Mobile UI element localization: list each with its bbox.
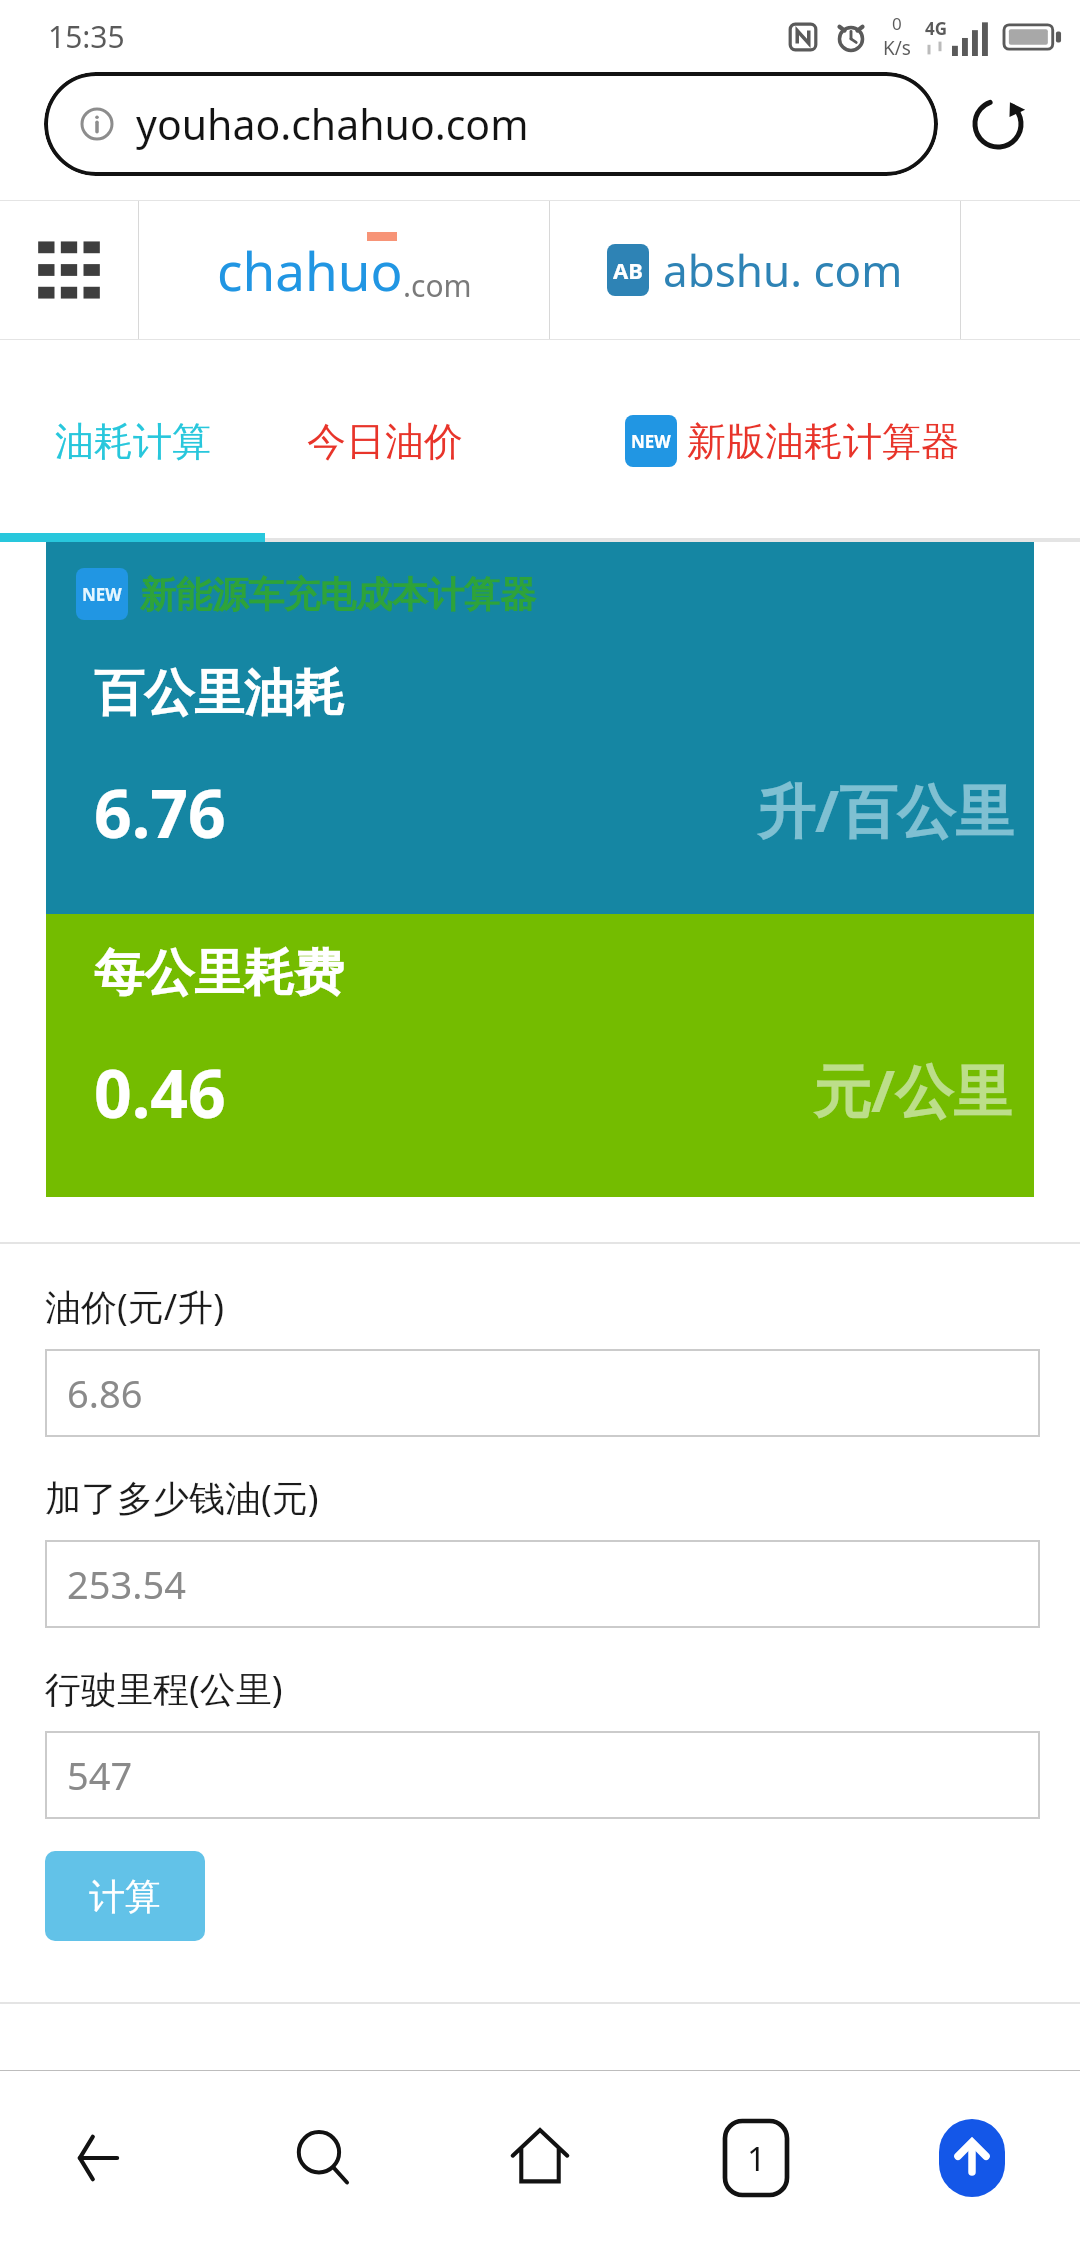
button[interactable]: NEW bbox=[505, 340, 1080, 542]
staticText: 计算 bbox=[89, 1874, 161, 1919]
button[interactable]: Reload bbox=[960, 86, 1036, 162]
staticText: 4G bbox=[925, 17, 948, 40]
button[interactable]: Apps bbox=[0, 200, 138, 340]
staticText: 253.54 bbox=[67, 1558, 186, 1610]
staticText: 6.76 bbox=[94, 767, 226, 857]
button[interactable]: Back bbox=[0, 2071, 216, 2244]
staticText: NEW bbox=[631, 430, 671, 453]
staticText: 0 bbox=[892, 12, 902, 35]
staticText: K/s bbox=[883, 35, 911, 61]
button[interactable]: 6.86 bbox=[45, 1349, 1040, 1437]
staticText: .com bbox=[403, 265, 472, 306]
staticText: abshu. com bbox=[663, 240, 903, 300]
button[interactable]: youhao.chahuo.com bbox=[44, 72, 938, 176]
staticText: 1 bbox=[747, 2136, 766, 2181]
staticText: chahuo bbox=[217, 234, 403, 306]
button[interactable]: 新能源车充电成本计算器 bbox=[140, 572, 536, 617]
staticText: 油价(元/升) bbox=[45, 1282, 224, 1331]
button[interactable]: 今日油价 bbox=[265, 340, 505, 542]
staticText: 油耗计算 bbox=[55, 417, 211, 466]
staticText: 百公里油耗 bbox=[94, 662, 344, 725]
button[interactable]: Scroll to top bbox=[864, 2071, 1080, 2244]
staticText: 今日油价 bbox=[307, 417, 463, 466]
button[interactable]: AB bbox=[550, 200, 960, 340]
staticText: 升/百公里 bbox=[757, 770, 1014, 849]
button[interactable]: 油耗计算 bbox=[0, 340, 265, 542]
staticText: 每公里耗费 bbox=[94, 942, 344, 1005]
button[interactable]: 计算 bbox=[45, 1851, 205, 1941]
button[interactable]: Search bbox=[216, 2071, 432, 2244]
button[interactable]: Tabs bbox=[648, 2071, 864, 2244]
staticText: youhao.chahuo.com bbox=[136, 96, 529, 152]
staticText: NEW bbox=[82, 583, 122, 606]
button[interactable]: 253.54 bbox=[45, 1540, 1040, 1628]
button[interactable]: 547 bbox=[45, 1731, 1040, 1819]
staticText: 0.46 bbox=[94, 1047, 226, 1137]
staticText: AB bbox=[613, 255, 643, 285]
staticText: 547 bbox=[67, 1749, 133, 1801]
staticText: 新版油耗计算器 bbox=[687, 417, 960, 466]
staticText: 元/公里 bbox=[813, 1050, 1012, 1129]
staticText: 行驶里程(公里) bbox=[45, 1664, 283, 1713]
staticText: 新能源车充电成本计算器 bbox=[140, 572, 536, 617]
button[interactable]: chahuo bbox=[139, 200, 549, 340]
staticText: 15:35 bbox=[48, 16, 125, 57]
button[interactable]: Home bbox=[432, 2071, 648, 2244]
staticText: 加了多少钱油(元) bbox=[45, 1473, 319, 1522]
staticText: 6.86 bbox=[67, 1367, 143, 1419]
